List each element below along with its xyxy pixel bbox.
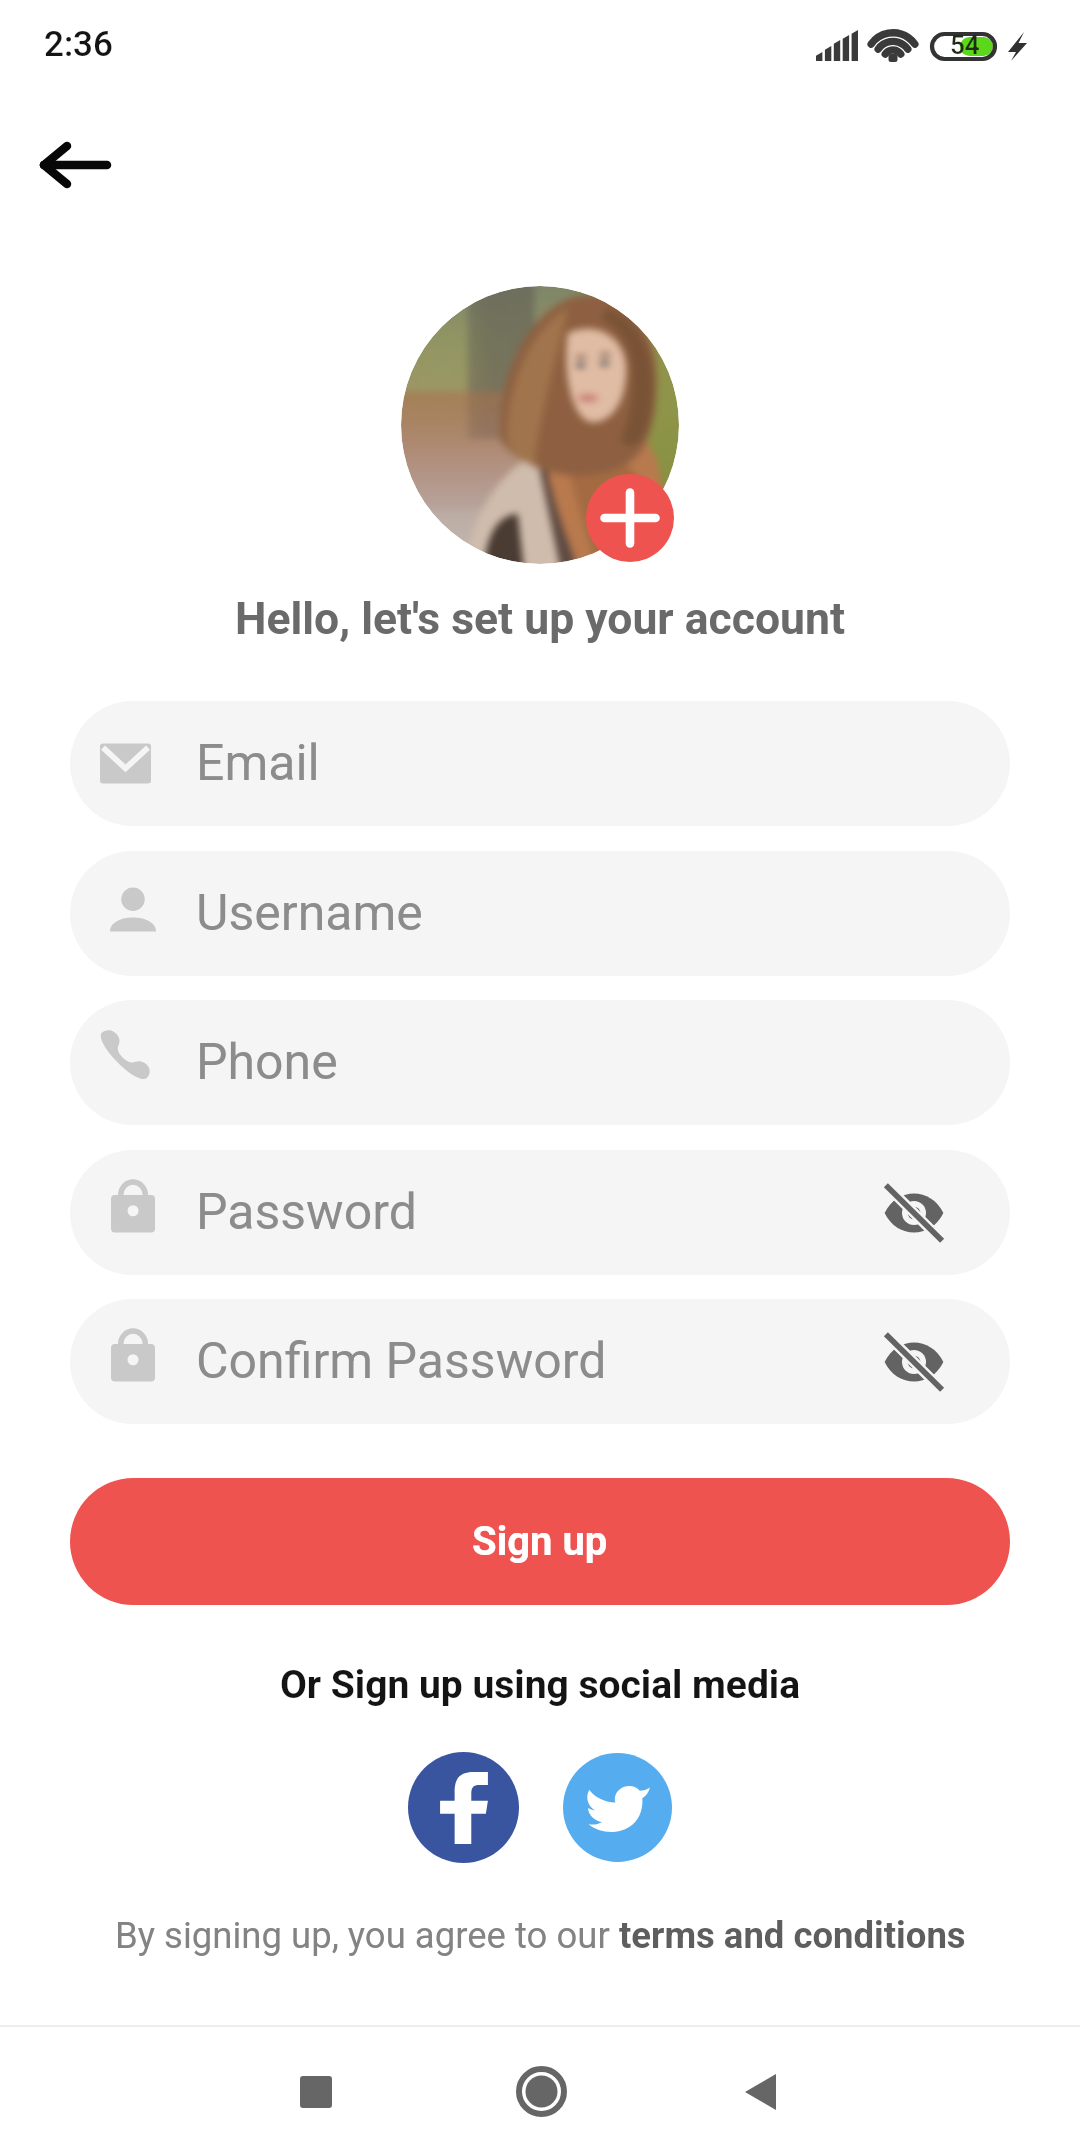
button[interactable]: By signing up, you agree to our [0, 1914, 1080, 1957]
staticText: Email [196, 734, 320, 793]
staticText: Sign up [472, 1518, 608, 1565]
button[interactable]: Toggle password visibility [852, 1150, 976, 1275]
button[interactable]: Sign up with Facebook [408, 1752, 519, 1863]
button[interactable]: Add photo [586, 474, 674, 562]
staticText: 54 [950, 30, 980, 60]
staticText: 2:36 [44, 24, 113, 65]
button[interactable]: Toggle password visibility [852, 1299, 976, 1424]
staticText: Username [196, 884, 423, 943]
staticText: Phone [196, 1033, 338, 1092]
staticText: terms and conditions [619, 1914, 966, 1957]
button[interactable]: Username [70, 851, 1010, 976]
button[interactable]: Email [70, 701, 1010, 826]
button[interactable]: Password [70, 1150, 1010, 1275]
button[interactable]: Sign up [70, 1478, 1010, 1605]
button[interactable]: Back [14, 92, 138, 215]
button[interactable]: Phone [70, 1000, 1010, 1125]
staticText: Confirm Password [196, 1332, 607, 1391]
staticText: By signing up, you agree to our [115, 1914, 619, 1957]
button[interactable]: Back [700, 2027, 820, 2156]
button[interactable]: Home [481, 2027, 601, 2156]
button[interactable]: Sign up with Twitter [563, 1753, 672, 1862]
button[interactable]: Recents [256, 2027, 376, 2156]
staticText: Password [196, 1183, 417, 1242]
button[interactable]: Confirm Password [70, 1299, 1010, 1424]
staticText: Hello, let's set up your account [0, 593, 1080, 645]
staticText: Or Sign up using social media [0, 1662, 1080, 1708]
